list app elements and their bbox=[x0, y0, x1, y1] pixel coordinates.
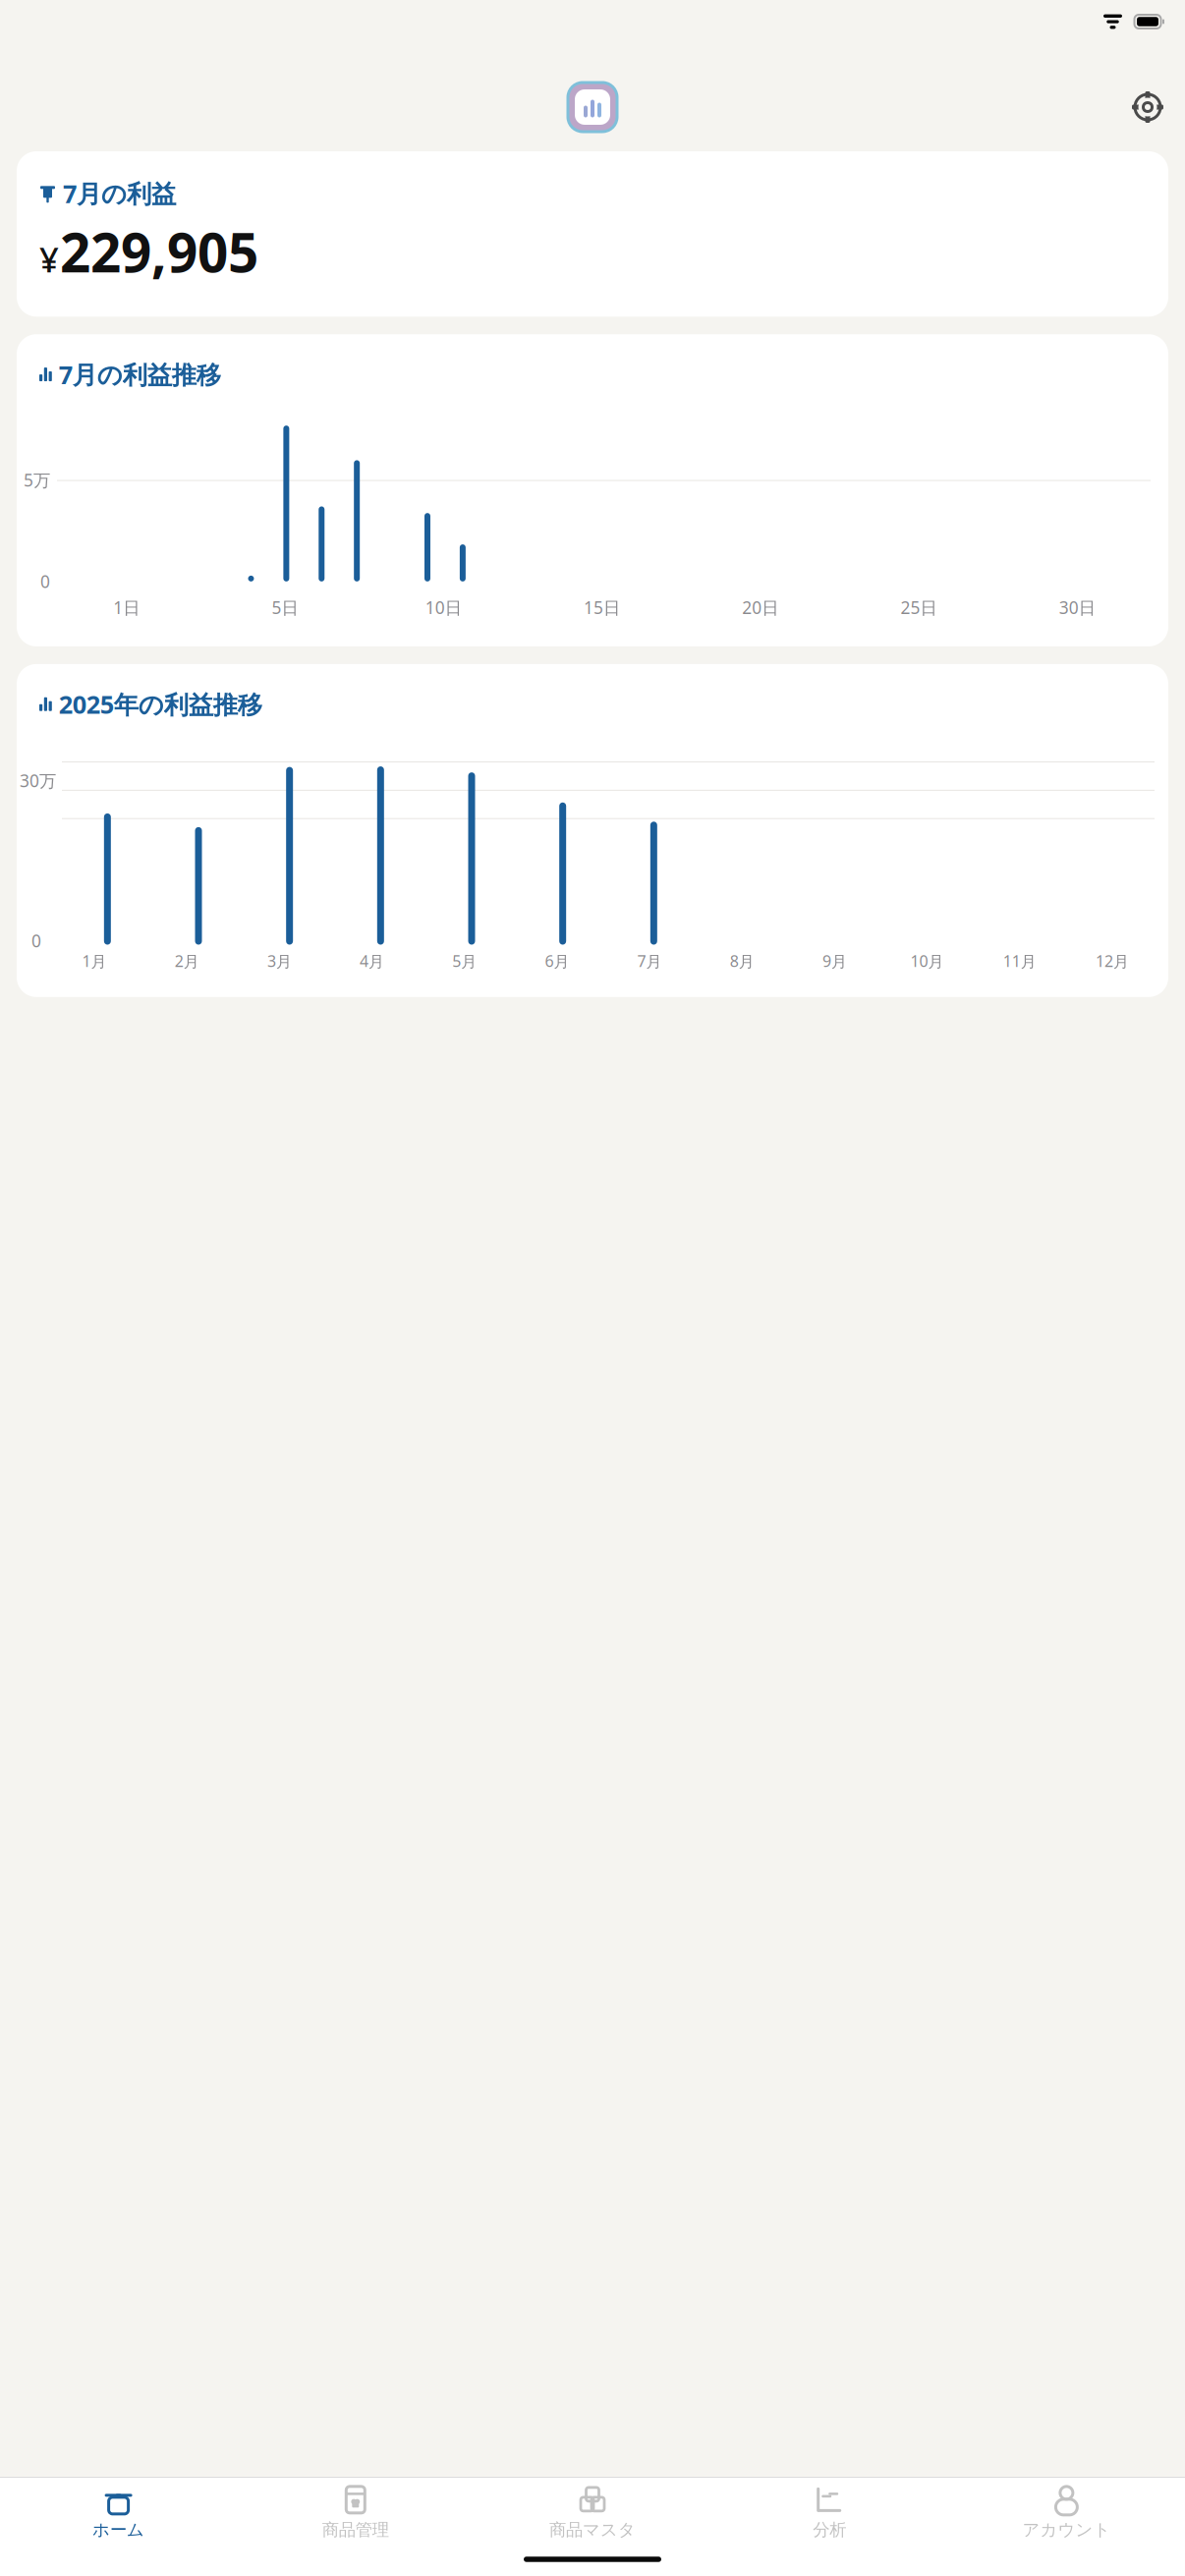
staticText: 分析 bbox=[813, 2519, 846, 2540]
staticText: 5万 bbox=[24, 469, 50, 491]
staticText: 30日 bbox=[1059, 596, 1095, 619]
staticText: 11月 bbox=[1003, 951, 1036, 971]
staticText: 0 bbox=[40, 570, 50, 593]
button[interactable]: 分析 bbox=[711, 2476, 948, 2544]
staticText: 4月 bbox=[360, 951, 384, 971]
staticText: 20日 bbox=[742, 596, 779, 619]
staticText: 8月 bbox=[730, 951, 754, 971]
staticText: 1月 bbox=[82, 951, 107, 971]
staticText: 2月 bbox=[175, 951, 199, 971]
button[interactable]: 商品マスタ bbox=[474, 2476, 711, 2544]
staticText: 10月 bbox=[910, 951, 944, 971]
staticText: 0 bbox=[31, 929, 41, 952]
staticText: 6月 bbox=[545, 951, 569, 971]
button[interactable]: 設定 bbox=[1123, 83, 1172, 132]
staticText: 25日 bbox=[901, 596, 937, 619]
staticText: ¥ bbox=[39, 236, 59, 282]
staticText: 5日 bbox=[272, 596, 298, 619]
staticText: 9月 bbox=[822, 951, 847, 971]
staticText: 7月の利益 bbox=[63, 177, 176, 210]
button[interactable]: アカウント bbox=[948, 2476, 1185, 2544]
staticText: 7月の利益推移 bbox=[59, 358, 221, 391]
staticText: 10日 bbox=[425, 596, 462, 619]
staticText: 商品マスタ bbox=[549, 2519, 636, 2540]
staticText: 3月 bbox=[267, 951, 292, 971]
staticText: 12月 bbox=[1095, 951, 1129, 971]
staticText: 15日 bbox=[584, 596, 620, 619]
staticText: 商品管理 bbox=[322, 2519, 389, 2540]
staticText: ホーム bbox=[92, 2519, 145, 2540]
staticText: 5月 bbox=[452, 951, 477, 971]
staticText: 229,905 bbox=[60, 216, 258, 287]
button[interactable]: 商品管理 bbox=[237, 2476, 474, 2544]
staticText: 7月 bbox=[637, 951, 662, 971]
staticText: 2025年の利益推移 bbox=[59, 688, 262, 721]
staticText: 30万 bbox=[20, 769, 56, 792]
staticText: アカウント bbox=[1022, 2519, 1111, 2540]
button[interactable]: ホーム bbox=[0, 2476, 237, 2544]
staticText: 1日 bbox=[113, 596, 140, 619]
